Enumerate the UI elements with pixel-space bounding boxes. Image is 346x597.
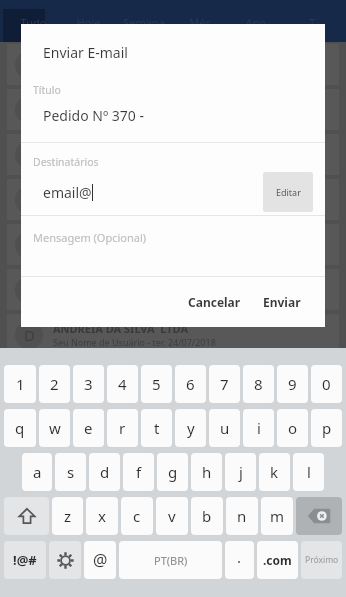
staticText: y — [187, 418, 195, 438]
button[interactable]: l — [293, 453, 324, 491]
button[interactable]: w — [39, 409, 70, 447]
staticText: Ano — [228, 15, 284, 30]
staticText: u — [220, 418, 230, 438]
staticText: Semana — [116, 15, 172, 30]
staticText: . — [237, 547, 242, 567]
button[interactable]: r — [107, 409, 138, 447]
button[interactable]: x — [86, 497, 118, 535]
button[interactable]: 9 — [277, 365, 308, 403]
button[interactable]: Settings — [49, 541, 81, 579]
button[interactable]: c — [121, 497, 153, 535]
button[interactable]: 7 — [209, 365, 240, 403]
button[interactable]: Cancelar — [182, 288, 247, 316]
button[interactable]: !@# — [4, 541, 46, 579]
button[interactable]: .com — [257, 541, 298, 579]
staticText: s — [67, 462, 75, 482]
staticText: Mensagem (Opcional) — [33, 230, 147, 245]
staticText: f — [136, 462, 142, 482]
staticText: 1 — [16, 374, 25, 394]
staticText: m — [270, 506, 285, 526]
button[interactable]: 1 — [4, 365, 36, 403]
staticText: i — [257, 418, 261, 438]
staticText: q — [15, 418, 25, 438]
staticText: Título — [33, 83, 61, 97]
staticText: Cancelar — [188, 294, 241, 310]
staticText: a — [33, 462, 42, 482]
staticText: Seu Nome de Usuário - ter. 24/07/2018 — [53, 156, 216, 168]
staticText: 2 — [50, 374, 59, 394]
button[interactable]: 3 — [73, 365, 104, 403]
staticText: t — [154, 418, 160, 438]
button[interactable]: o — [277, 409, 308, 447]
button[interactable]: h — [191, 453, 222, 491]
button[interactable]: @ — [84, 541, 116, 579]
button[interactable]: 6 — [175, 365, 206, 403]
button[interactable]: Enviar — [257, 288, 307, 316]
button[interactable]: 4 — [107, 365, 138, 403]
staticText: k — [270, 462, 279, 482]
staticText: D — [24, 235, 35, 255]
button[interactable]: m — [261, 497, 293, 535]
button[interactable]: Shift — [4, 497, 49, 535]
button[interactable]: p — [311, 409, 342, 447]
staticText: ANDREIA DA SILVA LTDA — [53, 51, 189, 66]
button[interactable]: Próximo — [301, 541, 342, 579]
staticText: D — [24, 325, 35, 345]
staticText: Seu Nome de Usuário - ter. 24/07/2018 — [53, 336, 216, 348]
button[interactable]: q — [4, 409, 36, 447]
staticText: b — [202, 506, 212, 526]
staticText: Editar — [276, 186, 301, 198]
staticText: D — [24, 145, 35, 165]
staticText: d — [100, 462, 110, 482]
staticText: T — [284, 15, 340, 30]
staticText: ANDREIA DA SILVA LTDA — [53, 321, 189, 336]
button[interactable]: i — [243, 409, 274, 447]
button[interactable]: a — [22, 453, 52, 491]
button[interactable]: t — [141, 409, 172, 447]
button[interactable]: k — [259, 453, 290, 491]
button[interactable]: g — [157, 453, 188, 491]
button[interactable]: 0 — [311, 365, 342, 403]
staticText: o — [288, 418, 298, 438]
staticText: ANDREIA DA SILVA LTDA — [53, 276, 189, 291]
staticText: Enviar E-mail — [43, 43, 128, 62]
staticText: Pedido Nº 370 - — [43, 106, 145, 125]
staticText: ANDREIA DA SILVA LTDA — [53, 231, 189, 246]
button[interactable]: j — [225, 453, 256, 491]
button[interactable]: z — [52, 497, 83, 535]
button[interactable]: s — [55, 453, 86, 491]
staticText: l — [307, 462, 311, 482]
button[interactable]: f — [123, 453, 154, 491]
button[interactable]: 5 — [141, 365, 172, 403]
staticText: Tudo — [6, 15, 61, 30]
staticText: g — [168, 462, 178, 482]
staticText: 8 — [254, 374, 263, 394]
button[interactable]: . — [225, 541, 254, 579]
staticText: Seu Nome de Usuário - ter. 24/07/2018 — [53, 291, 216, 303]
staticText: j — [239, 462, 243, 482]
button[interactable]: d — [89, 453, 120, 491]
button[interactable]: 8 — [243, 365, 274, 403]
button[interactable]: n — [226, 497, 258, 535]
staticText: 3 — [84, 374, 93, 394]
button[interactable]: v — [156, 497, 188, 535]
staticText: p — [322, 418, 332, 438]
button[interactable]: u — [209, 409, 240, 447]
button[interactable]: PT(BR) — [119, 541, 222, 579]
staticText: PT(BR) — [154, 553, 188, 568]
button[interactable]: y — [175, 409, 206, 447]
button[interactable]: Editar — [263, 172, 313, 212]
button[interactable]: 2 — [39, 365, 70, 403]
staticText: n — [237, 506, 247, 526]
button[interactable]: Backspace — [296, 497, 342, 535]
staticText: Hoje — [61, 15, 116, 30]
staticText: r — [119, 418, 126, 438]
button[interactable]: b — [191, 497, 223, 535]
staticText: v — [168, 506, 176, 526]
button[interactable]: e — [73, 409, 104, 447]
